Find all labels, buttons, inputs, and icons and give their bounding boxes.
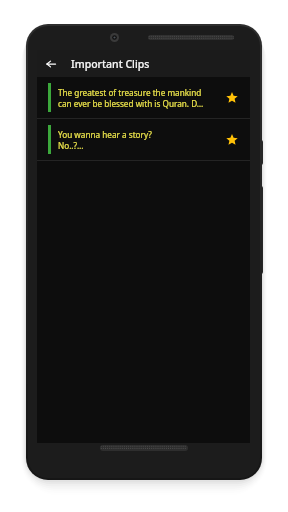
staticText: You wanna hear a story? <box>58 129 152 140</box>
staticText: No..?… <box>58 140 84 151</box>
button[interactable]: Back <box>37 50 64 77</box>
staticText: The greatest of treasure the mankind <box>58 87 202 98</box>
other: Volume buttons <box>258 186 263 274</box>
button[interactable]: Favourite <box>219 85 245 111</box>
other: Power button <box>258 140 263 165</box>
staticText: can ever be blessed with is Quran. D… <box>58 98 204 109</box>
staticText: Important Clips <box>71 57 150 71</box>
button[interactable]: The greatest of treasure the mankind <box>37 77 250 118</box>
button[interactable]: Favourite <box>219 127 245 153</box>
button[interactable]: You wanna hear a story? <box>37 119 250 160</box>
